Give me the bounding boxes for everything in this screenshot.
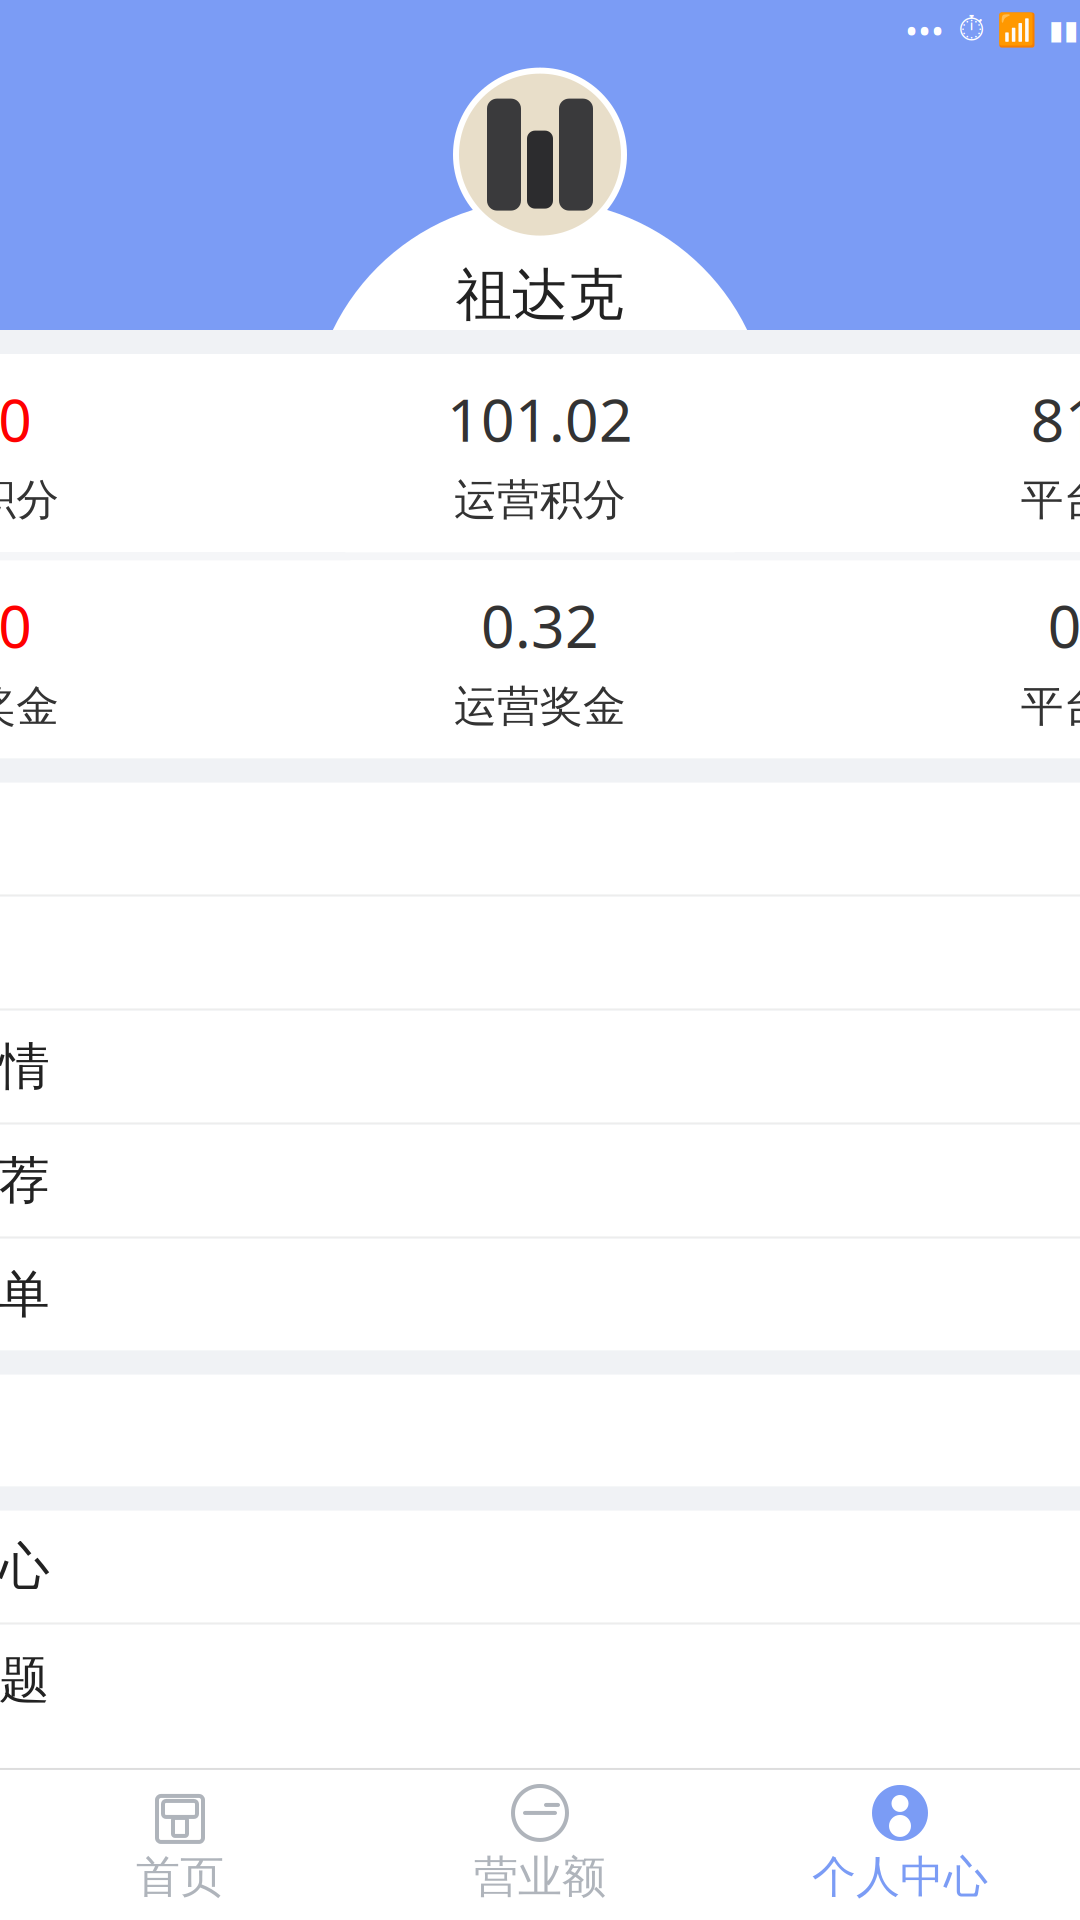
staticText: 平台奖金: [1021, 680, 1080, 733]
staticText: 0.14: [1048, 586, 1080, 664]
staticText: ⏱: [958, 13, 985, 47]
staticText: 个人中心: [812, 1850, 988, 1904]
button[interactable]: 首页: [0, 1782, 360, 1904]
button[interactable]: 个人中心: [720, 1782, 1080, 1904]
button[interactable]: 我的推荐: [0, 1125, 1080, 1239]
staticText: 运营积分: [454, 474, 626, 526]
staticText: 0.32: [481, 586, 599, 664]
staticText: 祖达克: [456, 261, 624, 329]
staticText: 我要录单: [0, 1263, 50, 1326]
staticText: 消费奖金: [0, 680, 59, 733]
staticText: •••: [905, 7, 944, 53]
staticText: 运营中心: [0, 1535, 50, 1598]
staticText: 1.00: [0, 380, 32, 458]
staticText: 平台积分: [1021, 474, 1080, 526]
staticText: 营业额: [474, 1850, 606, 1904]
staticText: 101.02: [447, 380, 633, 458]
staticText: 消费积分: [0, 474, 59, 526]
staticText: 📶: [997, 12, 1037, 48]
button[interactable]: 运营中心: [0, 1511, 1080, 1625]
staticText: 我的推荐: [0, 1149, 50, 1212]
staticText: 运营奖金: [454, 680, 626, 733]
button[interactable]: ?: [0, 1625, 1080, 1739]
button[interactable]: 订单详情: [0, 1011, 1080, 1125]
staticText: 1.70: [0, 586, 32, 664]
button[interactable]: [0, 1703, 1080, 1815]
staticText: 常见问题: [0, 1649, 50, 1712]
staticText: 81.21: [1031, 380, 1080, 458]
staticText: 订单详情: [0, 1035, 50, 1098]
staticText: 首页: [136, 1850, 224, 1904]
button[interactable]: 营业额: [360, 1782, 720, 1904]
button[interactable]: 我要录单: [0, 1239, 1080, 1351]
staticText: ▮▮▮: [1049, 15, 1080, 45]
